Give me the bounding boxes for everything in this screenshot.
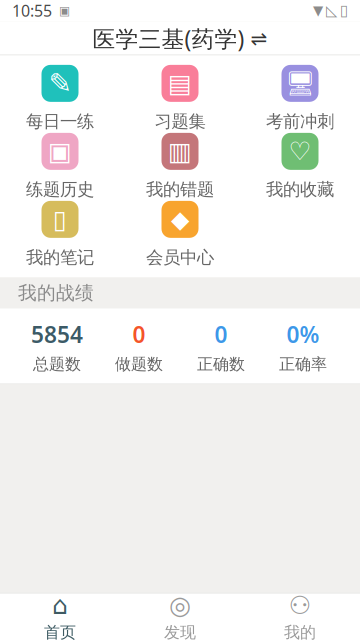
staticText: 正确数 [197, 354, 245, 374]
staticText: 习题集 [154, 111, 205, 132]
button[interactable]: ◎ [120, 592, 240, 640]
staticText: 总题数 [33, 354, 81, 374]
staticText: ⌂ [52, 591, 68, 620]
staticText: 每日一练 [26, 111, 94, 132]
staticText: ✎ [48, 67, 71, 99]
staticText: ▤ [168, 69, 192, 98]
button[interactable]: ◆ [120, 201, 240, 267]
staticText: ◺ [326, 2, 337, 19]
staticText: 🖥 [285, 70, 315, 97]
staticText: ♡ [288, 137, 311, 166]
staticText: 我的错题 [146, 179, 214, 200]
button[interactable]: ▤ [120, 65, 240, 131]
staticText: ⚇ [288, 591, 311, 620]
button[interactable]: 医学三基(药学) [82, 17, 277, 59]
button[interactable]: ⌂ [0, 592, 120, 640]
staticText: 0 [132, 319, 145, 349]
button[interactable]: ▣ [0, 133, 120, 199]
button[interactable]: 🖥 [240, 65, 360, 131]
staticText: 我的 [284, 623, 316, 640]
staticText: 我的战绩 [18, 281, 94, 304]
staticText: 考前冲刺 [266, 111, 334, 132]
staticText: 会员中心 [146, 247, 214, 268]
staticText: 首页 [44, 623, 76, 640]
button[interactable]: ▯ [0, 201, 120, 267]
button[interactable]: ⚇ [240, 592, 360, 640]
staticText: 医学三基(药学) [92, 23, 244, 53]
staticText: ◆ [171, 206, 189, 233]
staticText: 0 [214, 319, 227, 349]
staticText: 练题历史 [26, 179, 94, 200]
button[interactable]: ✎ [0, 65, 120, 131]
staticText: ▣ [48, 137, 72, 166]
staticText: 5854 [31, 319, 83, 349]
staticText: 正确率 [279, 354, 327, 374]
staticText: ▣ [59, 4, 70, 17]
staticText: ▥ [168, 137, 192, 166]
button[interactable]: ▥ [120, 133, 240, 199]
staticText: ▯ [53, 205, 67, 234]
staticText: ▯ [340, 2, 348, 19]
staticText: 我的收藏 [266, 179, 334, 200]
staticText: ◎ [169, 591, 191, 620]
staticText: 0% [286, 319, 319, 349]
staticText: 发现 [164, 623, 196, 640]
staticText: ▼ [313, 3, 323, 18]
staticText: 我的笔记 [26, 247, 94, 268]
staticText: ⇌ [250, 27, 267, 50]
button[interactable]: ♡ [240, 133, 360, 199]
staticText: 10:55 [12, 0, 52, 21]
staticText: 做题数 [115, 354, 163, 374]
